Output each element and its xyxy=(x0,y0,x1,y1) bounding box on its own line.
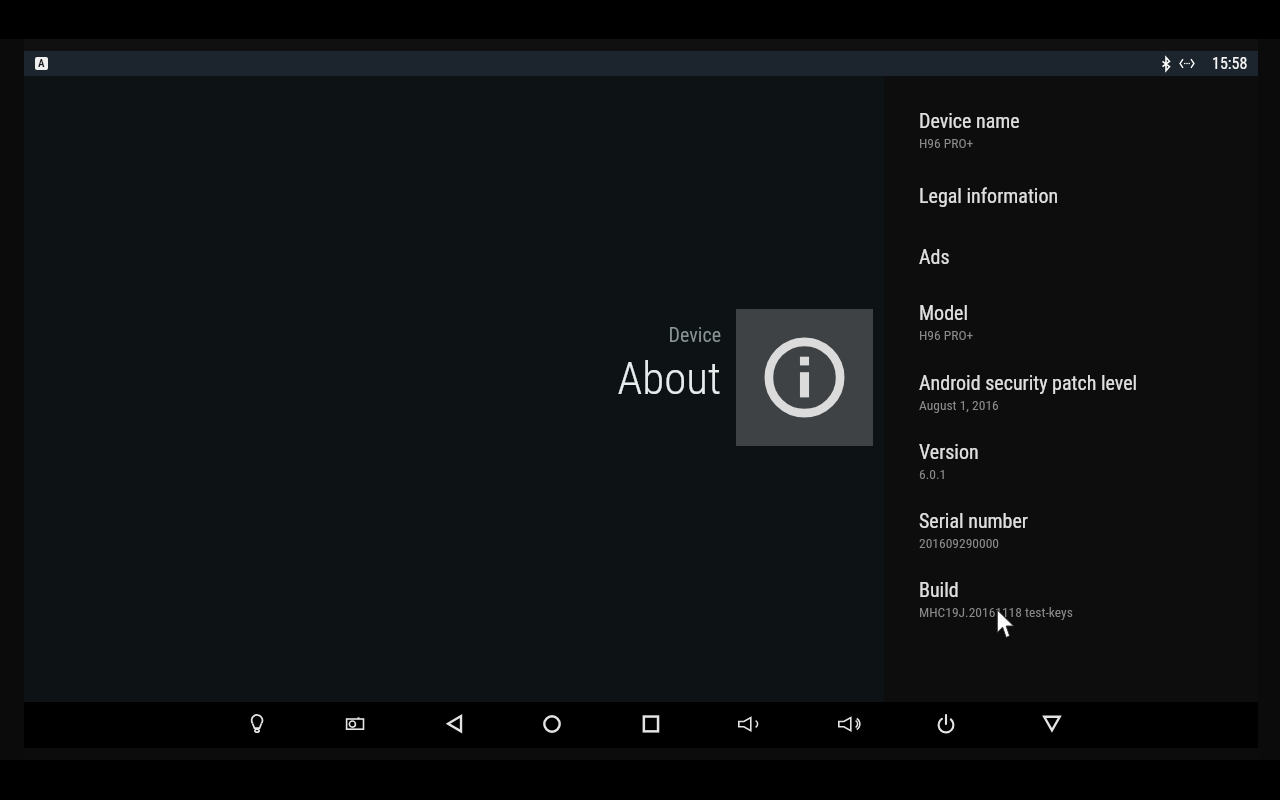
button[interactable]: Serial number xyxy=(884,497,1258,555)
staticText: 6.0.1 xyxy=(919,466,947,482)
staticText: Version xyxy=(919,440,979,463)
button[interactable]: Power xyxy=(922,701,970,747)
staticText: Ads xyxy=(919,245,950,268)
staticText: 201609290000 xyxy=(919,535,999,551)
button[interactable]: Volume up xyxy=(824,701,872,747)
button[interactable]: Model xyxy=(884,289,1258,347)
staticText: Model xyxy=(919,301,969,324)
staticText: Legal information xyxy=(919,184,1059,207)
staticText: About xyxy=(421,352,721,405)
button[interactable]: Volume down xyxy=(724,701,772,747)
staticText: H96 PRO+ xyxy=(919,327,974,343)
staticText: Device xyxy=(421,323,721,346)
button[interactable]: App notification xyxy=(35,57,48,70)
staticText: H96 PRO+ xyxy=(919,135,974,151)
staticText: Serial number xyxy=(919,509,1028,532)
button[interactable]: Back xyxy=(430,701,478,747)
button[interactable]: Device name xyxy=(884,97,1258,155)
button[interactable]: Ads xyxy=(884,233,1258,275)
staticText: MHC19J.20161118 test-keys xyxy=(919,604,1073,620)
button[interactable]: Screenshot xyxy=(331,701,379,747)
staticText: 15:58 xyxy=(1212,54,1248,73)
staticText: A xyxy=(38,57,45,70)
button[interactable]: Version xyxy=(884,428,1258,486)
staticText: August 1, 2016 xyxy=(919,397,999,413)
button[interactable]: Android security patch level xyxy=(884,359,1258,417)
button[interactable]: Legal information xyxy=(884,172,1258,214)
staticText: Android security patch level xyxy=(919,371,1138,394)
button[interactable]: Home xyxy=(528,701,576,747)
button[interactable]: Build xyxy=(884,566,1258,624)
staticText: Device name xyxy=(919,109,1020,132)
button[interactable]: Recent apps xyxy=(627,701,675,747)
button[interactable]: Hide navigation bar xyxy=(1028,701,1076,747)
staticText: Build xyxy=(919,578,959,601)
button[interactable]: Brightness xyxy=(233,701,281,747)
